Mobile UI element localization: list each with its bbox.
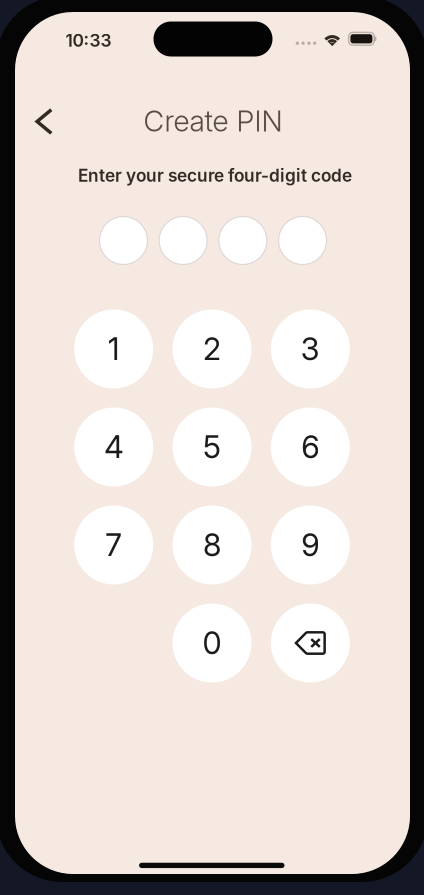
- button[interactable]: 0: [172, 603, 251, 682]
- button[interactable]: 7: [74, 505, 153, 584]
- staticText: 8: [203, 526, 221, 563]
- button[interactable]: 3: [271, 309, 350, 388]
- staticText: 6: [301, 428, 319, 465]
- staticText: 1: [108, 330, 120, 367]
- button[interactable]: Delete: [271, 603, 350, 682]
- button[interactable]: 4: [74, 407, 153, 486]
- staticText: 10:33: [65, 30, 111, 51]
- staticText: 5: [203, 428, 221, 465]
- staticText: Enter your secure four-digit code: [78, 165, 352, 186]
- button[interactable]: 9: [271, 505, 350, 584]
- staticText: 4: [104, 428, 123, 465]
- button[interactable]: 5: [172, 407, 251, 486]
- staticText: 0: [202, 624, 221, 661]
- button[interactable]: 6: [271, 407, 350, 486]
- staticText: 7: [105, 526, 122, 563]
- button[interactable]: 2: [172, 309, 251, 388]
- staticText: Create PIN: [143, 104, 282, 138]
- staticText: 2: [203, 330, 221, 367]
- button[interactable]: Back: [22, 99, 66, 143]
- button[interactable]: 8: [172, 505, 251, 584]
- staticText: 9: [301, 526, 319, 563]
- button[interactable]: 1: [74, 309, 153, 388]
- staticText: 3: [301, 330, 320, 367]
